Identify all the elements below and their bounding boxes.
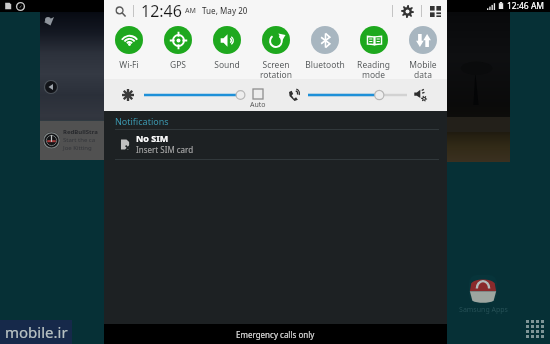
- button[interactable]: Bluetooth: [300, 21, 349, 79]
- staticText: Sound: [214, 59, 240, 71]
- button[interactable]: Sound: [202, 21, 251, 79]
- staticText: Emergency calls only: [236, 329, 315, 340]
- button[interactable]: GPS: [153, 21, 202, 79]
- staticText: AM: [185, 6, 197, 16]
- staticText: No SIM: [136, 132, 169, 144]
- button[interactable]: Mobile data: [398, 21, 447, 79]
- button[interactable]: No SIM: [104, 130, 447, 159]
- button[interactable]: Samsung Apps: [469, 275, 497, 303]
- staticText: 12:46: [141, 0, 182, 21]
- staticText: Joe Kitting: [63, 144, 92, 152]
- staticText: GPS: [170, 59, 186, 71]
- button[interactable]: Screen rotation: [251, 21, 300, 79]
- button[interactable]: Search: [113, 4, 127, 18]
- staticText: Notifications: [115, 115, 169, 127]
- button[interactable]: Call volume: [308, 89, 407, 101]
- button[interactable]: Reading mode: [349, 21, 398, 79]
- staticText: Reading mode: [357, 59, 390, 79]
- staticText: Start the ca: [63, 136, 96, 144]
- button[interactable]: Sound settings: [414, 88, 428, 102]
- button[interactable]: Edit quick settings: [429, 5, 441, 17]
- staticText: Tue, May 20: [202, 5, 248, 16]
- staticText: mobile.ir: [5, 322, 68, 342]
- button[interactable]: Auto brightness: [248, 89, 268, 110]
- button[interactable]: Brightness: [144, 89, 245, 101]
- button[interactable]: Apps: [526, 320, 544, 338]
- staticText: Samsung Apps: [459, 305, 508, 315]
- staticText: Screen rotation: [260, 59, 292, 79]
- staticText: Bluetooth: [305, 59, 345, 71]
- staticText: Wi-Fi: [119, 59, 139, 71]
- button[interactable]: Settings: [400, 4, 414, 18]
- staticText: Auto: [250, 100, 266, 110]
- staticText: RedBullStra: [63, 128, 98, 136]
- staticText: Insert SIM card: [136, 144, 194, 155]
- staticText: 12:46 AM: [507, 0, 545, 12]
- button[interactable]: Wi-Fi: [104, 21, 153, 79]
- staticText: Mobile data: [409, 59, 437, 79]
